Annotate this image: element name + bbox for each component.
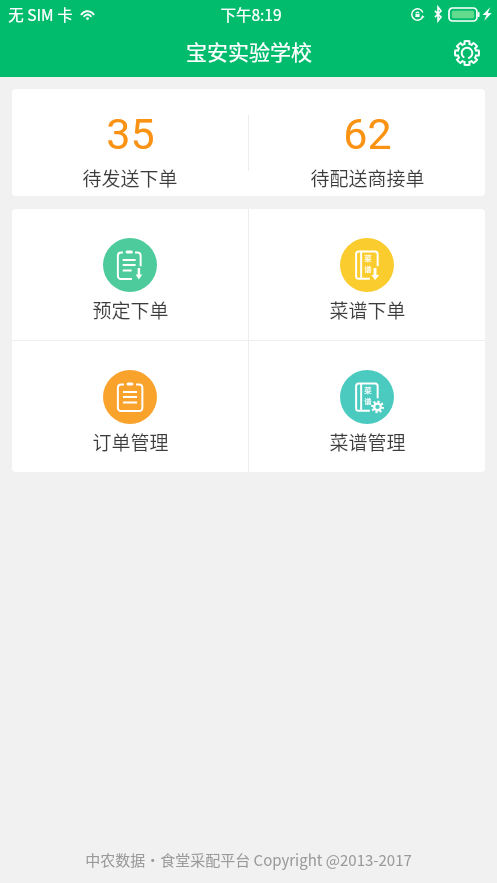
staticText: 待发送下单 — [82, 164, 178, 192]
staticText: 中农数据·食堂采配平台 Copyright @2013-2017 — [85, 849, 412, 871]
staticText: 62 — [343, 109, 392, 159]
button[interactable]: 62 — [249, 89, 485, 196]
staticText: 菜谱管理 — [329, 428, 406, 456]
staticText: 菜 — [364, 253, 372, 264]
staticText: 谱 — [364, 396, 372, 407]
button[interactable]: 菜 — [249, 209, 485, 340]
button[interactable]: Settings — [449, 35, 485, 71]
staticText: 谱 — [364, 264, 372, 275]
staticText: 菜谱下单 — [329, 296, 406, 324]
staticText: 订单管理 — [92, 428, 169, 456]
staticText: 无 SIM 卡 — [8, 3, 73, 25]
staticText: 预定下单 — [92, 296, 169, 324]
staticText: 菜 — [364, 385, 372, 396]
staticText: 待配送商接单 — [310, 164, 425, 192]
button[interactable]: 35 — [12, 89, 248, 196]
staticText: 下午8:19 — [220, 3, 282, 25]
button[interactable]: 菜 — [249, 341, 485, 472]
staticText: 宝安实验学校 — [186, 36, 312, 66]
button[interactable]: 订单管理 — [12, 341, 248, 472]
staticText: 35 — [106, 109, 155, 159]
button[interactable]: 预定下单 — [12, 209, 248, 340]
